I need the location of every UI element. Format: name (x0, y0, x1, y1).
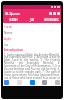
button[interactable]: More options (56, 11, 60, 15)
button[interactable]: Share app 4 (55, 80, 60, 85)
button[interactable]: SURAH (3, 17, 23, 23)
staticText: Juz (4, 43, 9, 47)
button[interactable]: Search (48, 11, 52, 15)
button[interactable]: Share app 3 (42, 80, 47, 85)
staticText: Introduction (4, 48, 23, 52)
button[interactable]: BOOKMARK (42, 17, 61, 23)
staticText: 1. In the name of Allah, the Entirely Me… (4, 53, 60, 79)
button[interactable]: Bookmark (52, 11, 56, 15)
button[interactable]: Share app 2 (30, 80, 35, 85)
staticText: Name (4, 31, 13, 35)
staticText: JUZ (30, 18, 35, 22)
staticText: BOOKMARK (44, 18, 59, 22)
button[interactable]: JUZ (23, 17, 42, 23)
button[interactable]: Share app 0 (4, 80, 9, 85)
staticText: SURAH (9, 18, 18, 22)
staticText: Al-Quran (5, 11, 21, 16)
staticText: Surah (4, 25, 13, 29)
staticText: Ayah (4, 37, 11, 41)
